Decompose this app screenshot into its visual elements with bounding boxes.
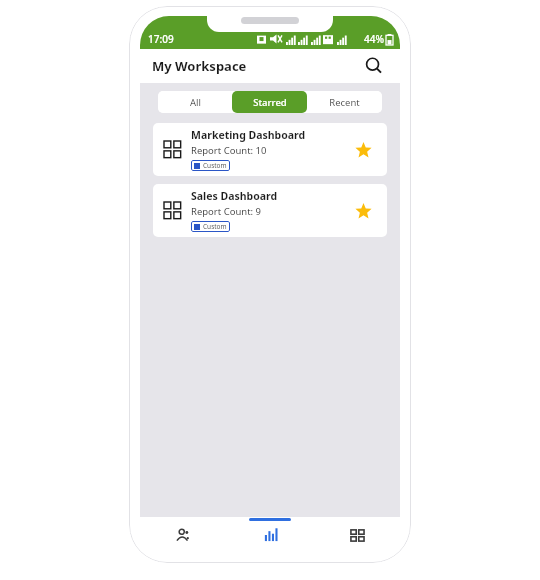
button[interactable]: Marketing Dashboard: [153, 123, 387, 176]
button[interactable]: Dashboards: [226, 517, 313, 553]
staticText: Report Count: 10: [191, 144, 267, 157]
staticText: Sales Dashboard: [191, 189, 278, 203]
button[interactable]: Recent: [307, 91, 382, 113]
button[interactable]: Starred: [350, 198, 376, 224]
button[interactable]: Sales Dashboard: [153, 184, 387, 237]
staticText: All: [190, 96, 201, 109]
button[interactable]: People: [140, 517, 226, 553]
button[interactable]: Starred: [232, 91, 307, 113]
button[interactable]: Search: [361, 53, 387, 79]
staticText: Starred: [253, 96, 287, 109]
staticText: Report Count: 9: [191, 205, 262, 218]
staticText: 17:09: [148, 32, 174, 46]
staticText: My Workspace: [152, 57, 247, 75]
button[interactable]: Apps: [313, 517, 400, 553]
staticText: 44%: [364, 32, 384, 46]
button[interactable]: Starred: [350, 137, 376, 163]
staticText: Custom: [203, 161, 227, 170]
staticText: Marketing Dashboard: [191, 128, 306, 142]
staticText: Recent: [329, 96, 360, 109]
staticText: Custom: [203, 222, 227, 231]
button[interactable]: All: [158, 91, 232, 113]
